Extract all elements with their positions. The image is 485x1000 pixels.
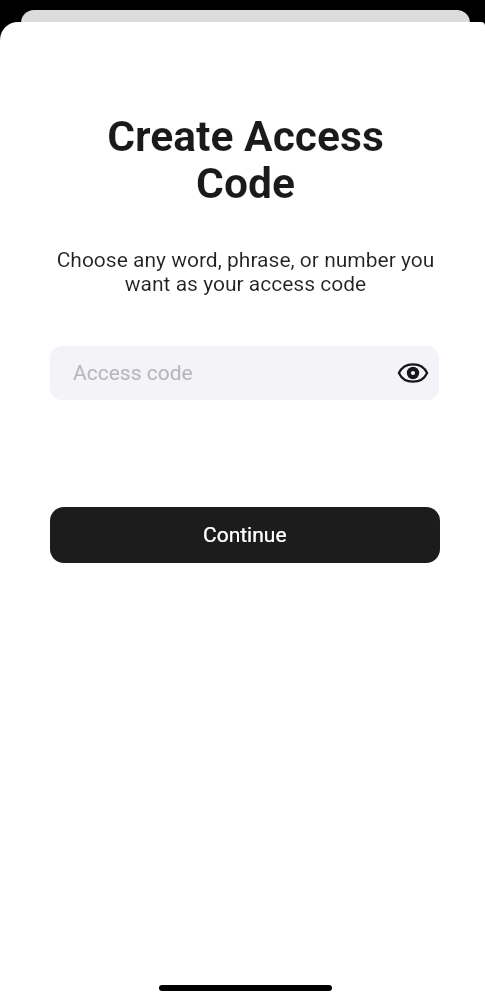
button[interactable]: Show access code [397,357,429,389]
staticText: Continue [203,523,287,548]
staticText: Access code [73,361,193,386]
staticText: Choose any word, phrase, or number you w… [23,248,468,296]
staticText: Create Access Code [3,111,485,208]
button[interactable]: Access code [50,346,439,400]
button[interactable]: Continue [50,507,440,563]
